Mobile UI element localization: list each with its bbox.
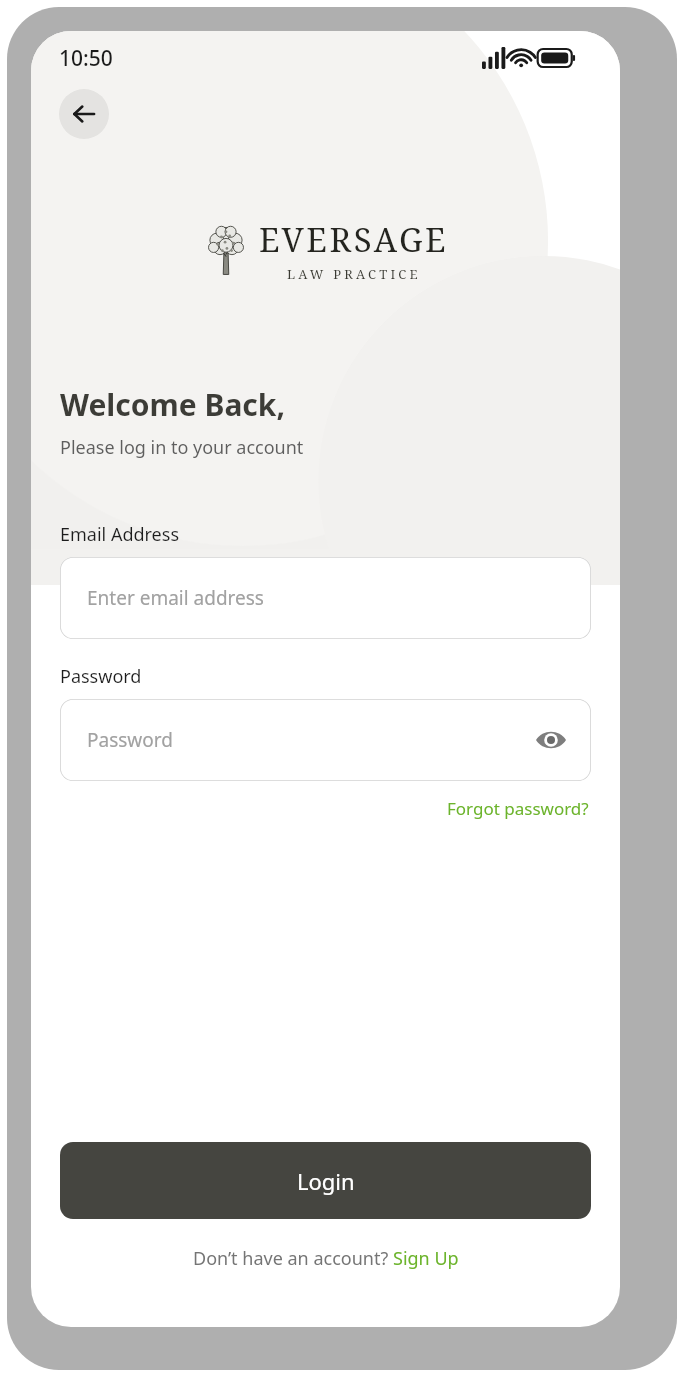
- staticText: Password: [87, 727, 173, 753]
- button[interactable]: Sign Up: [393, 1246, 459, 1271]
- staticText: Sign Up: [393, 1246, 459, 1271]
- staticText: Please log in to your account: [60, 435, 304, 460]
- staticText: Forgot password?: [447, 797, 589, 820]
- staticText: LAW PRACTICE: [287, 265, 421, 283]
- staticText: Enter email address: [87, 585, 264, 611]
- staticText: EVERSAGE: [259, 217, 449, 262]
- staticText: Don’t have an account?: [193, 1246, 393, 1271]
- button[interactable]: Forgot password?: [445, 795, 591, 822]
- staticText: Password: [60, 664, 142, 689]
- staticText: Login: [297, 1166, 355, 1196]
- button[interactable]: Enter email address: [60, 557, 591, 639]
- button[interactable]: Show password: [533, 722, 569, 758]
- staticText: 10:50: [59, 44, 113, 73]
- button[interactable]: Back: [59, 89, 109, 139]
- button[interactable]: Password: [60, 699, 591, 781]
- staticText: Welcome Back,: [60, 384, 285, 425]
- button[interactable]: Login: [60, 1142, 591, 1219]
- staticText: Email Address: [60, 522, 180, 547]
